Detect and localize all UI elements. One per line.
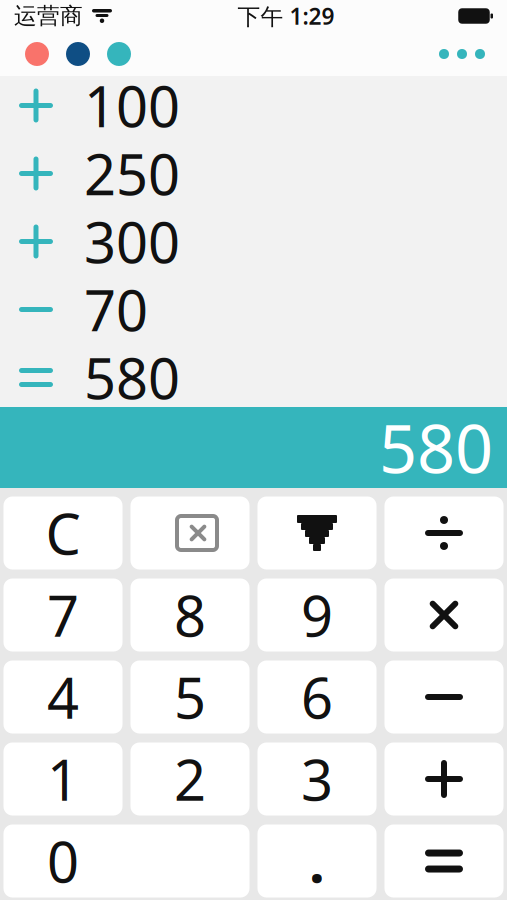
staticText: 6 (301, 660, 333, 734)
button[interactable]: Teal tape (107, 42, 131, 66)
button[interactable] (384, 742, 503, 815)
staticText: 7 (47, 578, 79, 652)
staticText: 4 (47, 660, 79, 734)
staticText: 5 (174, 660, 206, 734)
button[interactable] (384, 824, 503, 897)
button[interactable]: 4 (3, 660, 122, 733)
button[interactable]: C (3, 496, 122, 569)
button[interactable]: 7 (3, 578, 122, 651)
staticText: 8 (174, 578, 206, 652)
staticText: 300 (84, 204, 180, 279)
button[interactable] (384, 496, 503, 569)
staticText: 250 (84, 136, 180, 211)
staticText: 580 (379, 403, 493, 492)
staticText: 580 (84, 340, 180, 415)
button[interactable] (257, 496, 376, 569)
button[interactable]: 2 (130, 742, 249, 815)
staticText: 运营商 (14, 2, 83, 30)
button[interactable]: 6 (257, 660, 376, 733)
staticText: C (45, 496, 80, 570)
staticText: 2 (174, 742, 206, 816)
staticText: 100 (84, 68, 180, 143)
button[interactable]: Blue tape (66, 42, 90, 66)
button[interactable]: Red tape (25, 42, 49, 66)
button[interactable] (384, 578, 503, 651)
button[interactable]: 8 (130, 578, 249, 651)
button[interactable]: 5 (130, 660, 249, 733)
button[interactable] (130, 496, 249, 569)
staticText: 9 (301, 578, 333, 652)
staticText: 3 (301, 742, 333, 816)
button[interactable]: 1 (3, 742, 122, 815)
staticText: 1 (47, 742, 79, 816)
button[interactable]: More options (433, 37, 491, 71)
staticText: 70 (84, 272, 148, 347)
button[interactable]: . (257, 824, 376, 897)
button[interactable]: 0 (3, 824, 249, 897)
staticText: 0 (47, 824, 79, 898)
button[interactable]: 9 (257, 578, 376, 651)
staticText: 下午 1:29 (237, 1, 334, 31)
button[interactable] (384, 660, 503, 733)
button[interactable]: 3 (257, 742, 376, 815)
staticText: . (309, 824, 325, 898)
